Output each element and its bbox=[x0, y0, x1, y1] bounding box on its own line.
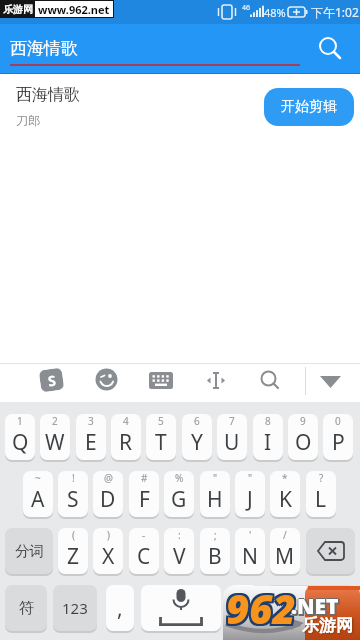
staticText: .NET bbox=[291, 594, 339, 623]
button[interactable] bbox=[320, 376, 341, 388]
button[interactable]: 8 bbox=[253, 414, 283, 460]
button[interactable] bbox=[141, 585, 221, 631]
staticText: 。 bbox=[235, 598, 251, 618]
staticText: 7 bbox=[229, 414, 235, 428]
staticText: ? bbox=[319, 471, 324, 485]
staticText: 962 bbox=[228, 579, 298, 633]
button[interactable]: 4 bbox=[111, 414, 141, 460]
button[interactable]: - bbox=[129, 528, 159, 574]
staticText: ' bbox=[249, 528, 252, 542]
staticText: Q bbox=[12, 428, 29, 457]
button[interactable]: 开始剪辑 bbox=[264, 88, 354, 126]
button[interactable] bbox=[259, 370, 281, 391]
staticText: 乐游网 bbox=[302, 615, 353, 636]
staticText: 48% bbox=[264, 5, 286, 20]
staticText: , bbox=[117, 594, 123, 623]
staticText: E bbox=[85, 428, 97, 457]
button[interactable]: 3 bbox=[76, 414, 106, 460]
button[interactable]: # bbox=[129, 471, 159, 517]
staticText: P bbox=[332, 428, 345, 457]
staticText: S bbox=[67, 485, 79, 514]
staticText: 西海情歌 bbox=[16, 85, 80, 105]
staticText: 2 bbox=[52, 414, 58, 428]
button[interactable]: 7 bbox=[217, 414, 247, 460]
staticText: U bbox=[224, 428, 240, 457]
staticText: V bbox=[173, 542, 186, 571]
button[interactable] bbox=[149, 372, 173, 389]
button[interactable]: " bbox=[200, 471, 230, 517]
button[interactable]: 0 bbox=[323, 414, 353, 460]
button[interactable]: 分词 bbox=[5, 528, 53, 574]
staticText: 6 bbox=[194, 414, 200, 428]
staticText: www.962.net bbox=[38, 2, 110, 17]
button[interactable]: 123 bbox=[53, 585, 97, 631]
button[interactable]: 6 bbox=[182, 414, 212, 460]
staticText: .NET bbox=[290, 592, 338, 621]
staticText: 9 bbox=[300, 414, 306, 428]
staticText: / bbox=[283, 528, 287, 542]
staticText: 3 bbox=[88, 414, 94, 428]
staticText: 123 bbox=[62, 598, 88, 618]
button[interactable]: @ bbox=[93, 471, 123, 517]
staticText: ; bbox=[214, 528, 217, 542]
button[interactable]: 1 bbox=[5, 414, 35, 460]
button[interactable] bbox=[95, 368, 118, 391]
staticText: 符 bbox=[19, 599, 34, 618]
staticText: G bbox=[171, 485, 187, 514]
staticText: .NET bbox=[293, 594, 341, 623]
staticText: " bbox=[213, 471, 218, 485]
staticText: % bbox=[175, 471, 184, 485]
staticText: O bbox=[295, 428, 312, 457]
button[interactable]: * bbox=[270, 471, 300, 517]
staticText: ! bbox=[72, 471, 75, 485]
staticText: N bbox=[242, 542, 258, 571]
button[interactable] bbox=[205, 371, 227, 390]
staticText: 962 bbox=[226, 579, 296, 633]
button[interactable]: ( bbox=[58, 528, 88, 574]
staticText: .NET bbox=[291, 591, 339, 620]
button[interactable] bbox=[312, 36, 348, 62]
button[interactable]: ) bbox=[93, 528, 123, 574]
button[interactable]: 符 bbox=[5, 585, 47, 631]
staticText: I bbox=[264, 428, 272, 457]
staticText: 西海情歌 bbox=[10, 38, 78, 59]
button[interactable]: 2 bbox=[40, 414, 70, 460]
button[interactable] bbox=[306, 528, 355, 574]
button[interactable]: 9 bbox=[288, 414, 318, 460]
staticText: W bbox=[45, 428, 65, 457]
staticText: L bbox=[315, 485, 327, 514]
button[interactable]: ~ bbox=[23, 471, 53, 517]
staticText: 5 bbox=[158, 414, 164, 428]
staticText: A bbox=[31, 485, 45, 514]
staticText: 962 bbox=[226, 581, 296, 635]
button[interactable]: ' bbox=[235, 528, 265, 574]
button[interactable]: / bbox=[270, 528, 300, 574]
button[interactable]: 。 bbox=[228, 585, 258, 631]
staticText: X bbox=[102, 542, 115, 571]
staticText: 962 bbox=[226, 583, 296, 637]
staticText: 下午1:02 bbox=[311, 4, 359, 20]
staticText: 1 bbox=[17, 414, 23, 428]
staticText: S bbox=[47, 370, 57, 390]
staticText: # bbox=[141, 471, 148, 485]
button[interactable]: 5 bbox=[146, 414, 176, 460]
button[interactable]: ? bbox=[306, 471, 336, 517]
button[interactable]: S bbox=[39, 367, 64, 392]
button[interactable]: , bbox=[106, 585, 134, 631]
staticText: @ bbox=[104, 471, 113, 485]
button[interactable]: ; bbox=[200, 528, 230, 574]
staticText: : bbox=[178, 528, 181, 542]
staticText: K bbox=[279, 485, 292, 514]
button[interactable]: % bbox=[164, 471, 194, 517]
staticText: B bbox=[208, 542, 222, 571]
staticText: - bbox=[142, 528, 146, 542]
staticText: * bbox=[282, 471, 288, 485]
staticText: 4 bbox=[123, 414, 129, 428]
button[interactable]: " bbox=[235, 471, 265, 517]
staticText: H bbox=[207, 485, 223, 514]
button[interactable] bbox=[265, 585, 355, 631]
staticText: ( bbox=[72, 528, 75, 542]
button[interactable]: : bbox=[164, 528, 194, 574]
staticText: 8 bbox=[265, 414, 271, 428]
button[interactable]: ! bbox=[58, 471, 88, 517]
